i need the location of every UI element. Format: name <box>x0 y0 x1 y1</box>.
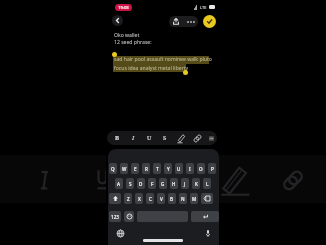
button[interactable]: V <box>157 193 165 204</box>
button[interactable]: Z <box>124 193 132 204</box>
button[interactable]: Y <box>164 163 172 174</box>
staticText: J <box>184 181 186 187</box>
button[interactable]: U <box>142 131 156 145</box>
button[interactable]: Back <box>112 15 123 26</box>
button[interactable]: R <box>142 163 150 174</box>
staticText: R <box>145 166 148 172</box>
button[interactable]: M <box>190 193 198 204</box>
button[interactable]: W <box>120 163 128 174</box>
staticText: W <box>122 166 127 172</box>
staticText: N <box>181 196 185 202</box>
button[interactable]: Confirm <box>203 15 216 28</box>
staticText: P <box>211 166 214 172</box>
staticText: C <box>149 196 152 202</box>
staticText: M <box>192 196 197 202</box>
button[interactable] <box>109 193 121 204</box>
button[interactable]: B <box>110 131 124 145</box>
button[interactable]: S <box>126 178 134 189</box>
staticText: Q <box>111 166 115 172</box>
button[interactable]: A <box>115 178 123 189</box>
staticText: 19:03 <box>118 5 129 11</box>
button[interactable]: Link <box>190 131 204 145</box>
staticText: E <box>134 166 137 172</box>
staticText: Z <box>127 196 130 202</box>
button[interactable]: K <box>192 178 200 189</box>
staticText: H <box>172 181 176 187</box>
button[interactable]: C <box>146 193 154 204</box>
button[interactable]: 123 <box>109 211 121 222</box>
button[interactable]: G <box>159 178 167 189</box>
staticText: A <box>117 181 121 187</box>
button[interactable]: O <box>197 163 205 174</box>
staticText: B <box>170 196 174 202</box>
staticText: 12 seed phrase: <box>114 39 152 46</box>
staticText: focus idea analyst metal liberty <box>114 65 189 72</box>
staticText: F <box>151 181 154 187</box>
button[interactable]: U <box>175 163 183 174</box>
button[interactable]: Text align <box>204 131 217 145</box>
staticText: U <box>177 166 181 172</box>
staticText: X <box>138 196 141 202</box>
button[interactable]: Change language <box>116 229 124 237</box>
button[interactable]: Share <box>169 16 183 27</box>
staticText: Y <box>167 166 170 172</box>
staticText: sad hair pool assault nominee walk pluto <box>114 56 212 63</box>
button[interactable]: Q <box>109 163 117 174</box>
button[interactable]: J <box>181 178 189 189</box>
button[interactable]: B <box>168 193 176 204</box>
staticText: S <box>163 134 167 142</box>
button[interactable]: D <box>137 178 145 189</box>
staticText: S <box>129 181 132 187</box>
staticText: 123 <box>111 214 119 220</box>
button[interactable]: Highlighter <box>174 131 188 145</box>
staticText: Oko wallet <box>114 32 140 39</box>
button[interactable] <box>191 211 219 222</box>
staticText: D <box>139 181 143 187</box>
staticText: K <box>195 181 198 187</box>
button[interactable]: I <box>126 131 140 145</box>
staticText: O <box>199 166 203 172</box>
button[interactable]: L <box>203 178 211 189</box>
staticText: B <box>115 134 120 142</box>
staticText: G <box>161 181 165 187</box>
button[interactable]: N <box>179 193 187 204</box>
button[interactable]: H <box>170 178 178 189</box>
staticText: U <box>147 134 152 142</box>
button[interactable]: Voice input <box>204 229 212 237</box>
button[interactable]: E <box>131 163 139 174</box>
button[interactable]: P <box>208 163 216 174</box>
staticText: I <box>189 166 191 172</box>
button[interactable]: F <box>148 178 156 189</box>
button[interactable]: More options <box>183 16 198 27</box>
button[interactable] <box>124 211 134 222</box>
button[interactable] <box>201 193 213 204</box>
staticText: LTE <box>200 5 207 10</box>
button[interactable]: S <box>158 131 172 145</box>
button[interactable]: T <box>153 163 161 174</box>
staticText: V <box>160 196 163 202</box>
button[interactable]: I <box>186 163 194 174</box>
staticText: I <box>132 134 135 142</box>
staticText: L <box>206 181 209 187</box>
button[interactable]: X <box>135 193 143 204</box>
staticText: T <box>156 166 159 172</box>
